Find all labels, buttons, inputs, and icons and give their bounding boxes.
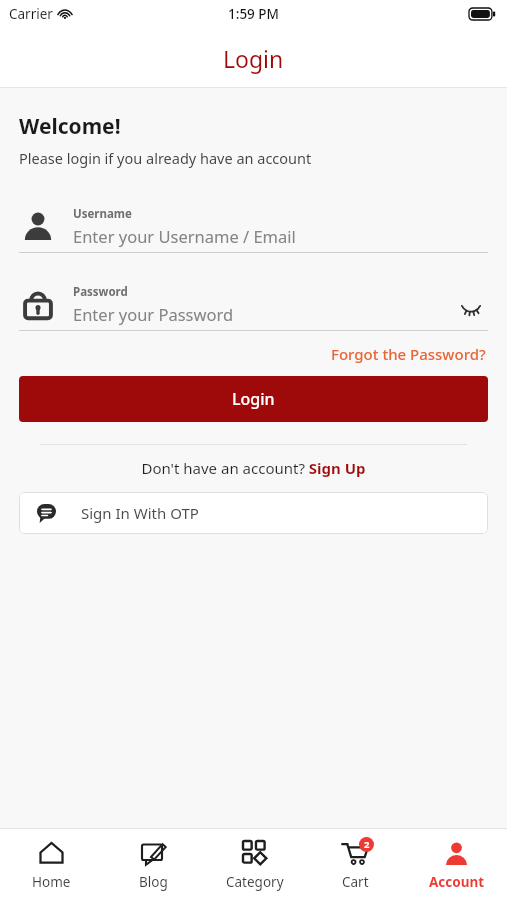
button[interactable]: Sign In With OTP bbox=[19, 492, 488, 534]
staticText: Sign In With OTP bbox=[81, 503, 199, 523]
staticText: Account bbox=[429, 873, 485, 891]
staticText: Login bbox=[223, 43, 284, 74]
button[interactable]: Don't have an account? Sign Up bbox=[141, 458, 366, 478]
button[interactable]: Blog bbox=[102, 829, 204, 900]
button[interactable]: Home bbox=[0, 829, 102, 900]
staticText: Username bbox=[73, 206, 132, 222]
staticText: Welcome! bbox=[19, 112, 121, 141]
staticText: Enter your Password bbox=[73, 303, 234, 325]
button[interactable]: Password bbox=[19, 278, 488, 331]
staticText: Category bbox=[226, 873, 284, 891]
staticText: Enter your Username / Email bbox=[73, 225, 296, 247]
button[interactable]: Forgot the Password? bbox=[329, 342, 488, 366]
button[interactable]: Category bbox=[204, 829, 305, 900]
staticText: Home bbox=[32, 873, 71, 891]
staticText: 2 bbox=[364, 838, 370, 851]
button[interactable]: Username bbox=[19, 200, 488, 253]
staticText: Please login if you already have an acco… bbox=[19, 148, 312, 168]
staticText: Don't have an account? Sign Up bbox=[141, 458, 366, 478]
staticText: Login bbox=[232, 388, 275, 410]
button[interactable]: 2 bbox=[305, 829, 406, 900]
button[interactable]: Show password bbox=[454, 287, 488, 321]
button[interactable]: Account bbox=[406, 829, 507, 900]
staticText: Password bbox=[73, 284, 128, 300]
staticText: 1:59 PM bbox=[228, 5, 279, 23]
staticText: Cart bbox=[342, 873, 369, 891]
button[interactable]: Login bbox=[19, 376, 488, 422]
staticText: Forgot the Password? bbox=[331, 344, 486, 364]
staticText: Carrier bbox=[9, 5, 53, 23]
staticText: Blog bbox=[139, 873, 168, 891]
